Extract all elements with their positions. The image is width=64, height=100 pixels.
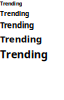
- staticText: Trending: [0, 9, 29, 18]
- staticText: Trending: [0, 47, 48, 61]
- staticText: Trending: [0, 20, 34, 30]
- staticText: Trending: [0, 33, 42, 45]
- staticText: Trending: [0, 0, 22, 7]
